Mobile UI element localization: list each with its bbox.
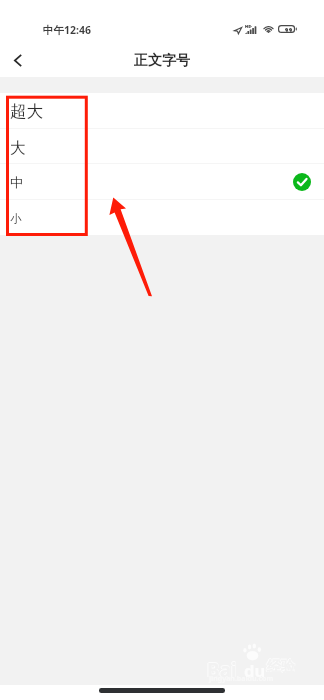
staticText: 中午12:46 [43,23,91,37]
staticText: du [244,659,266,681]
staticText: 正文字号 [134,52,190,70]
staticText: 大 [10,138,26,158]
button[interactable]: 大 [0,129,324,163]
staticText: 中 [10,174,24,191]
button[interactable]: 中 [0,164,324,199]
staticText: 小 [10,212,22,226]
button[interactable]: 小 [0,200,324,235]
button[interactable]: 超大 [0,93,324,128]
button[interactable]: Back [0,44,36,77]
staticText: 超大 [10,101,44,122]
